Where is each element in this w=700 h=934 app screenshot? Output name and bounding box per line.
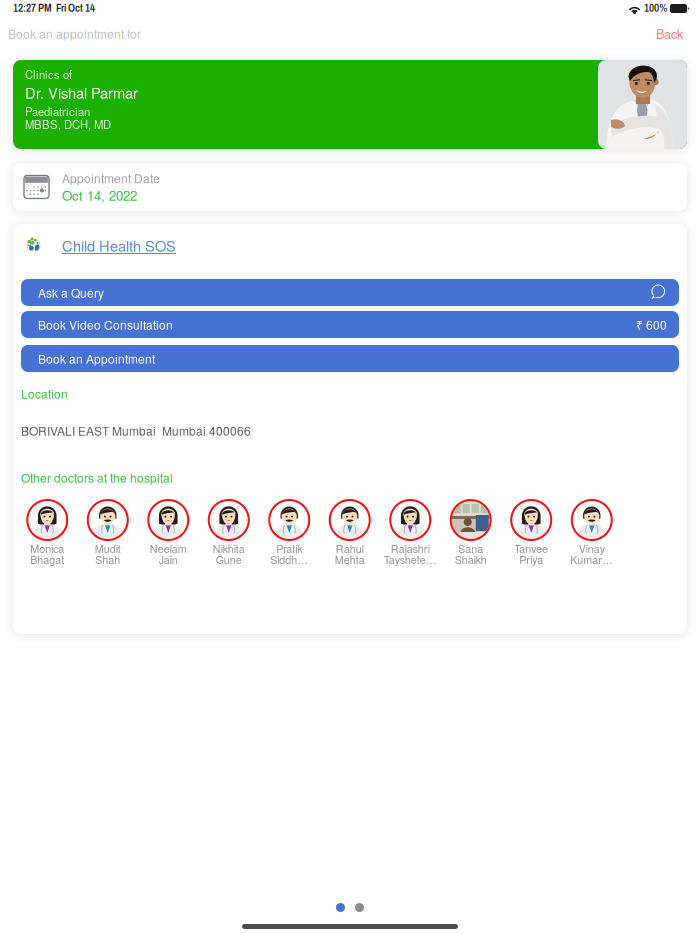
staticText: Vinay [579, 541, 605, 556]
button[interactable]: Rahul [319, 500, 380, 565]
staticText: Back [656, 24, 683, 42]
button[interactable]: Nikhita [198, 500, 259, 565]
button[interactable]: Back [652, 21, 687, 45]
staticText: Priya [519, 552, 543, 567]
button[interactable]: Monica [17, 500, 77, 565]
staticText: Neelam [150, 541, 187, 556]
staticText: Book an Appointment [38, 350, 155, 367]
button[interactable]: Pratik [259, 500, 319, 565]
staticText: 100% [640, 3, 670, 14]
staticText: Tayshete… [384, 552, 437, 567]
button[interactable]: Child Health SOS [13, 224, 687, 279]
button[interactable]: Book an Appointment [21, 345, 679, 372]
staticText: Shaikh [455, 552, 487, 567]
button[interactable]: Sana [440, 500, 501, 565]
staticText: Book Video Consultation [38, 316, 173, 333]
staticText: Child Health SOS [62, 235, 176, 256]
staticText: ₹ 600 [636, 316, 667, 333]
staticText: Bhagat [30, 552, 64, 567]
staticText: Sana [458, 541, 483, 556]
staticText: Dr. Vishal Parmar [25, 82, 138, 103]
staticText: Nikhita [213, 541, 245, 556]
button[interactable]: Page 1 [336, 903, 345, 912]
staticText: Clinics of [25, 66, 72, 82]
staticText: Pratik [276, 541, 302, 556]
staticText: Shah [95, 552, 120, 567]
button[interactable]: Page 2 [355, 903, 364, 912]
staticText: Oct 14, 2022 [62, 185, 137, 205]
button[interactable]: Ask a Query [21, 279, 679, 306]
staticText: Mehta [335, 552, 365, 567]
staticText: BORIVALI EAST Mumbai Mumbai 400066 [21, 422, 251, 439]
staticText: Appointment Date [62, 169, 160, 187]
staticText: Ask a Query [38, 284, 104, 301]
staticText: Mudit [95, 541, 121, 556]
button[interactable]: Vinay [561, 500, 622, 565]
staticText: Book an appointment for [8, 25, 141, 42]
button[interactable]: Mudit [77, 500, 138, 565]
staticText: Kumar… [570, 552, 613, 567]
staticText: Tanvee [514, 541, 548, 556]
button[interactable]: Book Video Consultation [21, 311, 679, 338]
staticText: Location [21, 385, 68, 402]
staticText: Monica [30, 541, 64, 556]
staticText: Rajashri [391, 541, 430, 556]
button[interactable]: Neelam [138, 500, 198, 565]
staticText: Paediatrician [25, 103, 90, 119]
staticText: MBBS, DCH, MD [25, 116, 111, 132]
staticText: Rahul [336, 541, 364, 556]
staticText: Siddh… [270, 552, 308, 567]
staticText: Jain [159, 552, 178, 567]
staticText: 12:27 PM Fri Oct 14 [13, 3, 95, 14]
button[interactable]: Rajashri [380, 500, 440, 565]
button[interactable]: Tanvee [501, 500, 561, 565]
staticText: Other doctors at the hospital [21, 469, 173, 486]
staticText: Gune [216, 552, 242, 567]
